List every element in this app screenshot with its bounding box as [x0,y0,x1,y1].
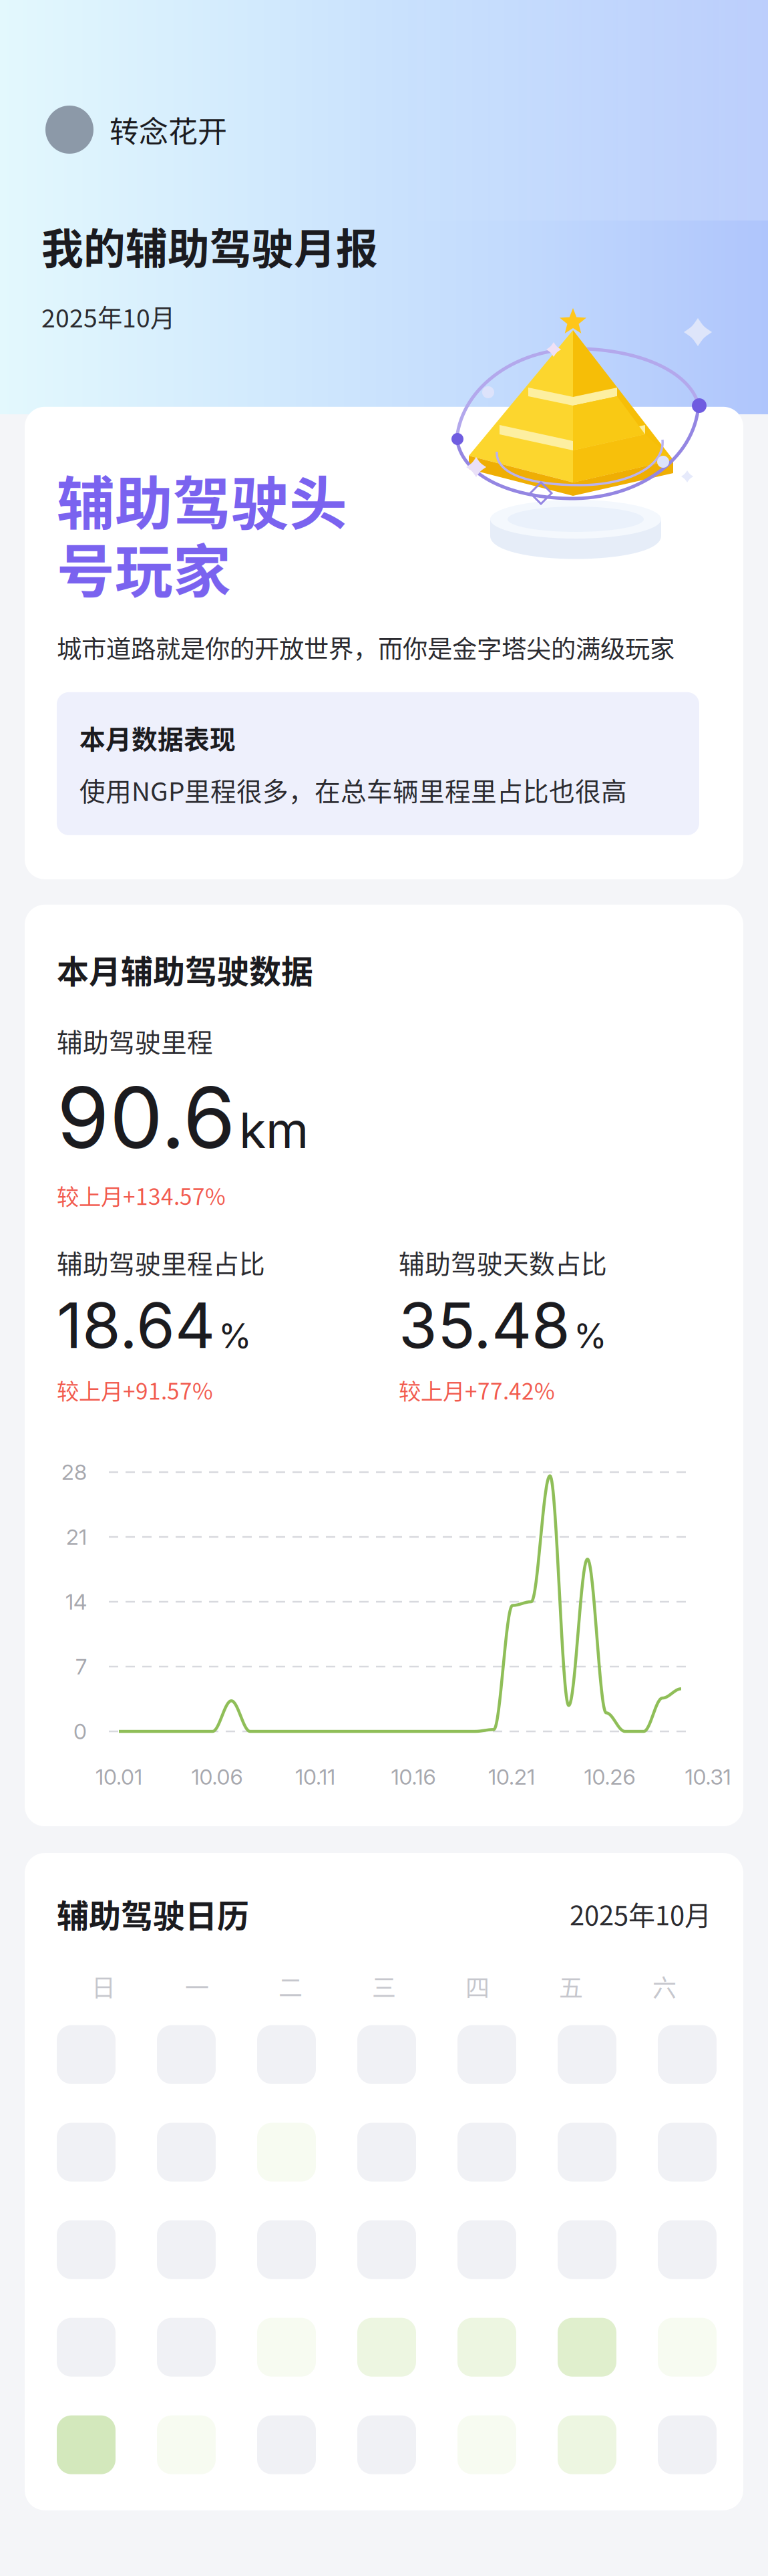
staticText: 四 [465,1969,490,2004]
staticText: 10.11 [295,1764,335,1790]
staticText: 辅助驾驶里程 [57,1022,213,1059]
staticText: 三 [372,1969,396,2004]
staticText: 城市道路就是你的开放世界，而你是金字塔尖的满级玩家 [57,629,675,665]
staticText: 六 [652,1969,677,2004]
staticText: 辅助驾驶头 [57,458,347,541]
staticText: 2025年10月 [41,298,175,335]
staticText: % [218,1315,252,1356]
staticText: 10.26 [584,1764,635,1790]
staticText: 7 [75,1654,87,1680]
staticText: 五 [559,1969,583,2004]
staticText: 本月数据表现 [79,719,236,756]
staticText: 日 [91,1969,116,2004]
staticText: 10.21 [488,1764,535,1790]
staticText: 10.06 [191,1764,243,1790]
staticText: 辅助驾驶日历 [57,1890,249,1937]
staticText: 使用NGP里程很多，在总车辆里程里占比也很高 [79,771,627,808]
staticText: 较上月+134.57% [57,1179,226,1211]
staticText: % [574,1315,607,1356]
staticText: km [239,1101,309,1160]
staticText: 较上月+91.57% [57,1374,213,1406]
staticText: 90.6 [57,1066,236,1168]
staticText: 转念花开 [110,108,227,151]
staticText: 一 [185,1969,209,2004]
staticText: 辅助驾驶里程占比 [57,1243,265,1281]
staticText: 28 [61,1459,87,1485]
staticText: 21 [66,1524,87,1550]
staticText: 2025年10月 [570,1894,711,1933]
staticText: 10.16 [391,1764,436,1790]
button[interactable]: 转念花开 [45,106,227,154]
staticText: 35.48 [399,1288,570,1363]
staticText: 10.31 [685,1764,731,1790]
staticText: 二 [278,1969,303,2004]
staticText: 我的辅助驾驶月报 [41,215,378,276]
staticText: 较上月+77.42% [399,1374,555,1406]
staticText: 号玩家 [57,525,231,609]
staticText: 本月辅助驾驶数据 [57,946,313,993]
staticText: 0 [73,1718,87,1744]
staticText: 10.01 [95,1764,142,1790]
staticText: 14 [65,1589,87,1615]
staticText: 辅助驾驶天数占比 [399,1243,607,1281]
staticText: 18.64 [57,1288,215,1363]
